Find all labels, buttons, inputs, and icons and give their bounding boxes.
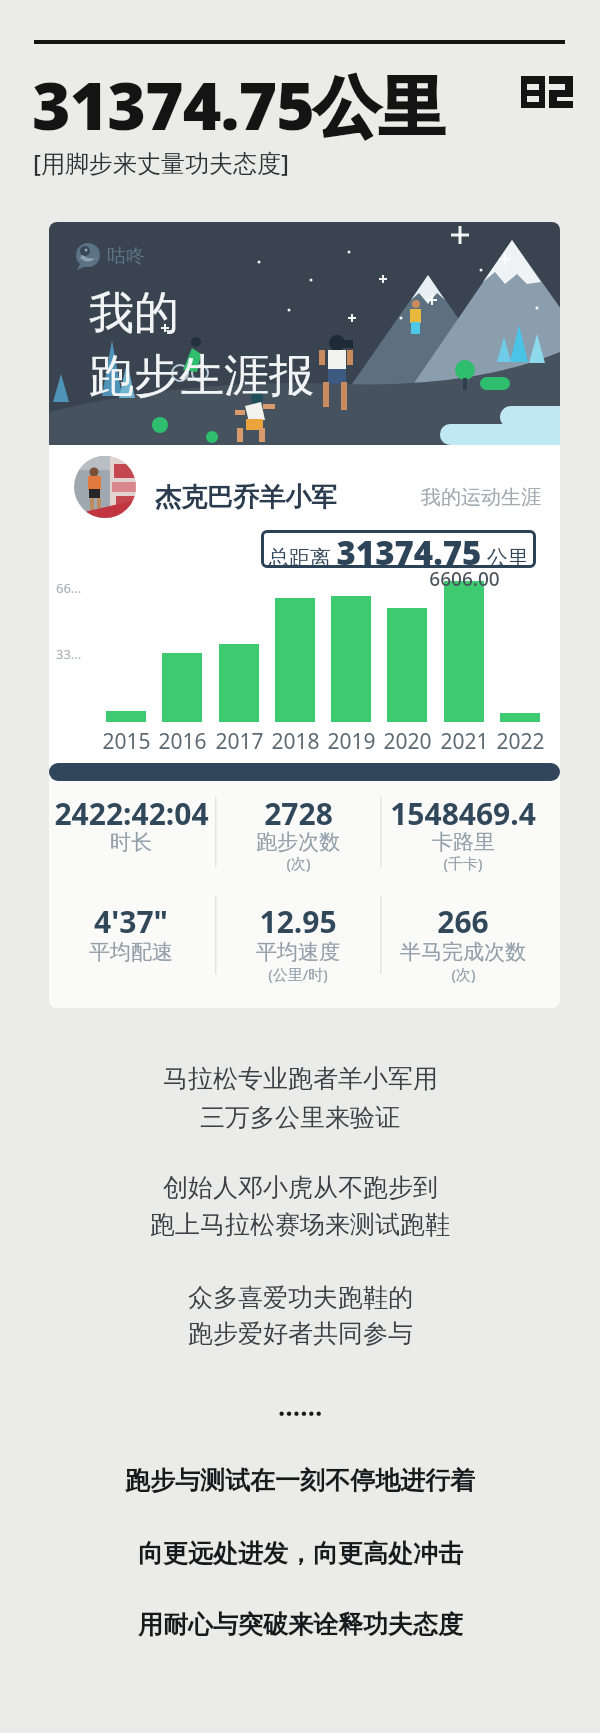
staticText: 平均速度	[256, 939, 340, 965]
staticText: 2019	[327, 727, 376, 756]
staticText: 时长	[110, 829, 152, 855]
staticText: 2022	[496, 727, 545, 756]
staticText: 创始人邓小虎从不跑步到	[163, 1172, 438, 1203]
staticText: (次)	[286, 853, 311, 873]
staticText: 66...	[56, 579, 82, 597]
staticText: ……	[278, 1388, 323, 1423]
staticText: (公里/时)	[268, 964, 328, 984]
staticText: 向更远处进发，向更高处冲击	[138, 1538, 463, 1569]
staticText: 12.95	[259, 901, 337, 942]
staticText: 用耐心与突破来诠释功夫态度	[138, 1609, 463, 1640]
staticText: 2017	[215, 727, 264, 756]
staticText: 1548469.4	[390, 793, 536, 834]
staticText: (千卡)	[443, 853, 483, 873]
staticText: 跑步爱好者共同参与	[188, 1318, 413, 1349]
staticText: 跑步生涯报	[89, 348, 314, 405]
staticText: 我的	[89, 285, 179, 342]
staticText: 6606.00	[429, 566, 500, 592]
staticText: 2016	[158, 727, 207, 756]
staticText: 卡路里	[432, 829, 495, 855]
staticText: 咕咚	[107, 244, 145, 268]
staticText: 总距离 31374.75 公里	[268, 530, 529, 568]
staticText: 4'37"	[94, 901, 168, 942]
button[interactable]: 咕咚	[49, 222, 560, 1008]
staticText: 33...	[56, 645, 82, 663]
staticText: 平均配速	[89, 939, 173, 965]
staticText: 2020	[383, 727, 432, 756]
staticText: 2015	[102, 727, 151, 756]
staticText: 266	[437, 901, 489, 942]
staticText: 2422:42:04	[54, 793, 209, 834]
staticText: 跑步次数	[256, 829, 340, 855]
staticText: 三万多公里来验证	[200, 1102, 400, 1133]
staticText: 跑上马拉松赛场来测试跑鞋	[150, 1209, 450, 1240]
staticText: 半马完成次数	[400, 939, 526, 965]
staticText: 31374.75公里	[32, 59, 444, 149]
staticText: 杰克巴乔羊小军	[155, 481, 337, 514]
staticText: (次)	[451, 964, 476, 984]
staticText: 马拉松专业跑者羊小军用	[163, 1063, 438, 1094]
staticText: 2018	[271, 727, 320, 756]
staticText: [用脚步来丈量功夫态度]	[33, 146, 289, 179]
staticText: 我的运动生涯	[421, 485, 541, 510]
staticText: 跑步与测试在一刻不停地进行着	[125, 1465, 475, 1496]
staticText: 2021	[440, 727, 489, 756]
staticText: 众多喜爱功夫跑鞋的	[188, 1282, 413, 1313]
staticText: 2728	[264, 793, 333, 834]
